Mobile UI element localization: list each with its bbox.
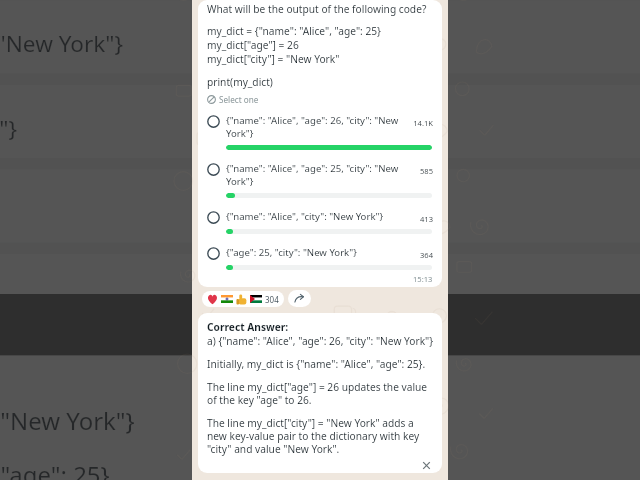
- button[interactable]: {"age": 25, "city": "New York"}: [0, 198, 640, 254]
- button[interactable]: Correct Answer:: [0, 355, 640, 480]
- button[interactable]: What will be the output of the following…: [0, 0, 640, 294]
- staticText: {"name": "Alice", "age": 26, "city": "Ne…: [226, 114, 407, 140]
- staticText: {"name": "Alice", "age": 25, "city": "Ne…: [226, 162, 407, 188]
- staticText: 15:13: [413, 274, 433, 284]
- button[interactable]: {"name": "Alice", "age": 26, "city": "Ne…: [207, 114, 433, 150]
- button[interactable]: Forwarded: [288, 290, 311, 307]
- staticText: {"age": 25, "city": "New York"}: [226, 246, 407, 259]
- button[interactable]: Close: [419, 458, 434, 473]
- staticText: What will be the output of the following…: [207, 2, 427, 16]
- button[interactable]: {"age": 25, "city": "New York"}: [207, 246, 433, 270]
- button[interactable]: 304: [202, 291, 284, 307]
- staticText: 14.1K: [411, 118, 433, 128]
- staticText: 413: [411, 214, 433, 224]
- staticText: Initially, my_dict is {"name": "Alice", …: [207, 357, 426, 371]
- button[interactable]: {"name": "Alice", "age": 25, "city": "Ne…: [207, 162, 433, 198]
- staticText: Select one: [219, 94, 259, 105]
- staticText: a) {"name": "Alice", "age": 26, "city": …: [0, 404, 137, 437]
- staticText: {"age": 25, "city": "New York"}: [0, 198, 640, 228]
- staticText: {"name": "Alice", "city": "New York"}: [226, 210, 407, 223]
- staticText: 364: [411, 250, 433, 260]
- staticText: The line my_dict["city"] = "New York" ad…: [207, 416, 434, 456]
- button[interactable]: What will be the output of the following…: [198, 0, 442, 287]
- button[interactable]: {"name": "Alice", "city": "New York"}: [0, 113, 640, 169]
- staticText: a) {"name": "Alice", "age": 26, "city": …: [207, 334, 434, 348]
- staticText: {"name": "Alice", "age": 25, "city": "Ne…: [0, 28, 640, 59]
- staticText: my_dict = {"name": "Alice", "age": 25} m…: [207, 24, 381, 66]
- staticText: Initially, my_dict is {"name": "Alice", …: [0, 458, 118, 480]
- staticText: The line my_dict["age"] = 26 updates the…: [207, 380, 434, 407]
- button[interactable]: {"name": "Alice", "city": "New York"}: [207, 210, 433, 234]
- staticText: 585: [411, 166, 433, 176]
- staticText: Correct Answer:: [207, 320, 289, 334]
- button[interactable]: Correct Answer:: [198, 313, 442, 473]
- staticText: print(my_dict): [207, 75, 273, 89]
- staticText: 304: [265, 294, 279, 305]
- button[interactable]: {"name": "Alice", "age": 25, "city": "Ne…: [0, 28, 640, 85]
- staticText: {"name": "Alice", "city": "New York"}: [0, 113, 640, 144]
